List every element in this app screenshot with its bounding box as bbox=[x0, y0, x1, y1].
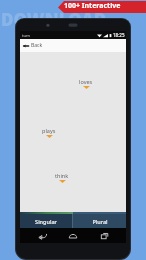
button[interactable]: think bbox=[55, 172, 69, 183]
staticText: loves bbox=[79, 78, 93, 85]
button[interactable]: Recents bbox=[96, 228, 112, 243]
staticText: Singular bbox=[35, 218, 57, 225]
button[interactable]: Back bbox=[20, 39, 126, 52]
staticText: DOWNLOAD bbox=[1, 8, 107, 30]
staticText: Back bbox=[31, 42, 43, 49]
staticText: turn bbox=[22, 33, 31, 38]
staticText: think bbox=[55, 172, 69, 179]
staticText: plays bbox=[42, 127, 56, 134]
staticText: Plural bbox=[92, 218, 108, 225]
button[interactable]: plays bbox=[42, 127, 56, 138]
button[interactable]: Plural bbox=[73, 214, 126, 228]
button[interactable]: Home bbox=[65, 228, 81, 243]
button[interactable]: loves bbox=[79, 78, 93, 89]
button[interactable]: Back bbox=[35, 228, 51, 243]
button[interactable]: Singular bbox=[20, 214, 72, 228]
staticText: 100+ Interactive Games bbox=[64, 1, 146, 13]
staticText: 18:25 bbox=[113, 32, 125, 38]
